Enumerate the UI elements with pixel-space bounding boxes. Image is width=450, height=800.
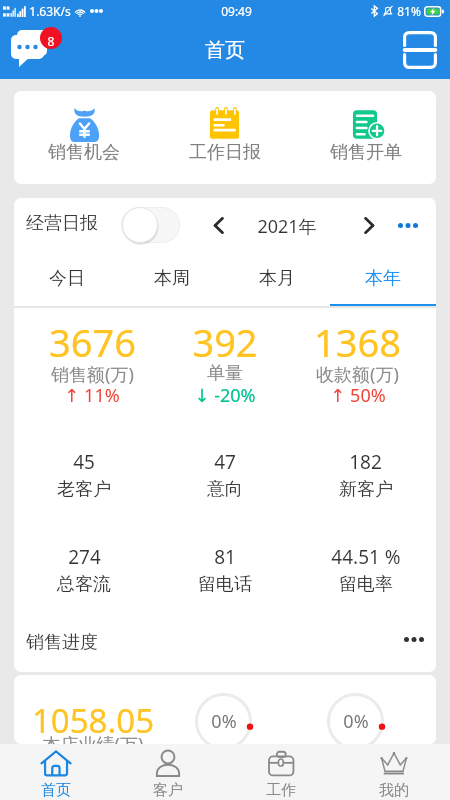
staticText: 首页	[41, 781, 71, 800]
staticText: 3676	[49, 323, 136, 368]
staticText: 经营日报	[26, 212, 98, 235]
button[interactable]: 274	[14, 544, 154, 596]
staticText: 本年	[365, 267, 401, 290]
button[interactable]: 45	[14, 449, 154, 501]
button[interactable]: 81	[154, 544, 295, 596]
staticText: 1368	[314, 323, 401, 368]
button[interactable]: 本月	[224, 251, 330, 306]
staticText: ↑ 50%	[330, 383, 386, 408]
staticText: 老客户	[57, 478, 111, 501]
staticText: 客户	[153, 781, 183, 800]
button[interactable]: 本周	[119, 251, 224, 306]
button[interactable]: 首页	[0, 744, 112, 800]
button[interactable]: 工作	[224, 744, 337, 800]
button[interactable]: 客户	[112, 744, 224, 800]
staticText: 销售开单	[330, 141, 402, 164]
staticText: 0%	[343, 709, 369, 734]
staticText: 新客户	[339, 478, 393, 501]
staticText: 1.63K/s	[29, 3, 71, 19]
button[interactable]: 182	[295, 449, 436, 501]
button[interactable]: 44.51 %	[295, 544, 436, 596]
staticText: ↓ -20%	[194, 383, 256, 408]
staticText: 工作日报	[189, 141, 261, 164]
button[interactable]: More options	[398, 623, 430, 655]
staticText: 销售机会	[48, 141, 120, 164]
staticText: 留电率	[339, 573, 393, 596]
staticText: 本周	[154, 267, 190, 290]
button[interactable]: More	[392, 209, 424, 241]
button[interactable]: Previous year	[203, 209, 235, 241]
staticText: 0%	[211, 709, 237, 734]
staticText: 意向	[207, 478, 243, 501]
staticText: 392	[192, 323, 258, 368]
button[interactable]: 47	[154, 449, 295, 501]
staticText: 182	[349, 449, 382, 475]
staticText: 留电话	[198, 573, 252, 596]
staticText: 收款额(万)	[316, 362, 399, 387]
staticText: 首页	[205, 38, 245, 63]
staticText: 1058.05	[28, 698, 158, 743]
button[interactable]: 工作日报	[154, 91, 295, 184]
staticText: 单量	[207, 362, 243, 385]
button[interactable]: Switch layout	[395, 24, 445, 76]
staticText: 我的	[379, 781, 409, 800]
button[interactable]: Messages	[6, 24, 64, 76]
staticText: 销售额(万)	[51, 362, 134, 387]
staticText: 今日	[49, 267, 85, 290]
staticText: 8	[46, 33, 56, 49]
staticText: 2021年	[256, 214, 318, 239]
staticText: 81	[214, 544, 236, 570]
button[interactable]: 今日	[14, 251, 119, 306]
staticText: ↑ 11%	[64, 383, 120, 408]
button[interactable]: 销售开单	[295, 91, 436, 184]
button[interactable]: 本年	[330, 251, 436, 306]
staticText: 本月	[259, 267, 295, 290]
staticText: 09:49	[221, 3, 252, 19]
staticText: 274	[68, 544, 101, 570]
staticText: 销售进度	[26, 631, 98, 654]
button[interactable]: 销售机会	[14, 91, 154, 184]
staticText: 81%	[397, 3, 421, 19]
staticText: 总客流	[57, 573, 111, 596]
button[interactable]: Next year	[353, 209, 385, 241]
staticText: 45	[73, 449, 95, 475]
staticText: 工作	[266, 781, 296, 800]
button[interactable]: 我的	[337, 744, 450, 800]
staticText: 44.51 %	[331, 544, 401, 570]
button[interactable]: Toggle daily report	[121, 206, 180, 244]
staticText: 47	[214, 449, 236, 475]
staticText: 本店业绩(万)	[28, 732, 158, 744]
